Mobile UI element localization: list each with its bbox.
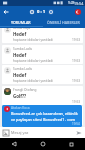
staticText: ÖNEMLİ HABERLER (47, 20, 80, 25)
staticText: 19:53 (72, 59, 81, 63)
button[interactable]: Recents (66, 139, 76, 149)
staticText: Hedef (13, 52, 27, 58)
button[interactable]: Back (9, 139, 19, 149)
staticText: 19:54 (74, 1, 84, 6)
staticText: hapisane iddialari yanitladi (13, 120, 54, 124)
button[interactable]: Kemal Kaya (2, 28, 83, 43)
button[interactable]: Sumba Ladis (2, 45, 83, 64)
staticText: %28 (68, 1, 75, 5)
staticText: Mehmet Yilmaz (13, 108, 37, 112)
staticText: 19:54 (72, 122, 80, 126)
button[interactable]: Language (74, 8, 82, 16)
button[interactable]: Home (38, 139, 48, 149)
staticText: Penalti (13, 113, 29, 119)
button[interactable]: Atakan Koca (2, 105, 82, 127)
button[interactable]: YORUMLAR (0, 18, 42, 28)
staticText: hapisane iddialari yanitladi (13, 79, 54, 83)
staticText: 19:53 (72, 38, 81, 42)
staticText: Atakan Koca (11, 106, 30, 110)
staticText: 19:53 (72, 100, 81, 104)
button[interactable]: ÖNEMLİ HABERLER (42, 18, 85, 28)
staticText: Hedef (13, 72, 27, 78)
staticText: 19:52 (72, 120, 81, 124)
button[interactable]: Send (75, 129, 83, 137)
button[interactable]: Back (0, 6, 12, 18)
staticText: Sumba Ladis (13, 67, 33, 71)
button[interactable]: Add image (2, 129, 9, 136)
staticText: Golf?? (13, 93, 27, 99)
staticText: Bonusfeed-er çok kazandıran, etkinlik (11, 111, 78, 116)
staticText: hapisane iddialari yanitladi (13, 59, 54, 63)
button[interactable]: Sumba Ladis (2, 65, 83, 84)
staticText: hapisane iddialari yanitladi (13, 38, 54, 42)
staticText: Sumba Ladis (13, 47, 33, 51)
button[interactable]: Frangli Otofang (2, 86, 83, 105)
staticText: ve paylaşan sitesi Bonusfeed1 . com (11, 117, 75, 122)
staticText: Kemal Kaya (13, 28, 31, 30)
staticText: Hedef (13, 31, 27, 37)
staticText: Frangli Otofang (13, 88, 37, 92)
staticText: 19:53 (72, 79, 81, 83)
button[interactable]: Mehmet Yilmaz (2, 106, 83, 125)
staticText: Mesaj yaz (11, 130, 75, 135)
staticText: YORUMLAR (11, 20, 31, 25)
staticText: 0 : 1 (37, 9, 46, 15)
